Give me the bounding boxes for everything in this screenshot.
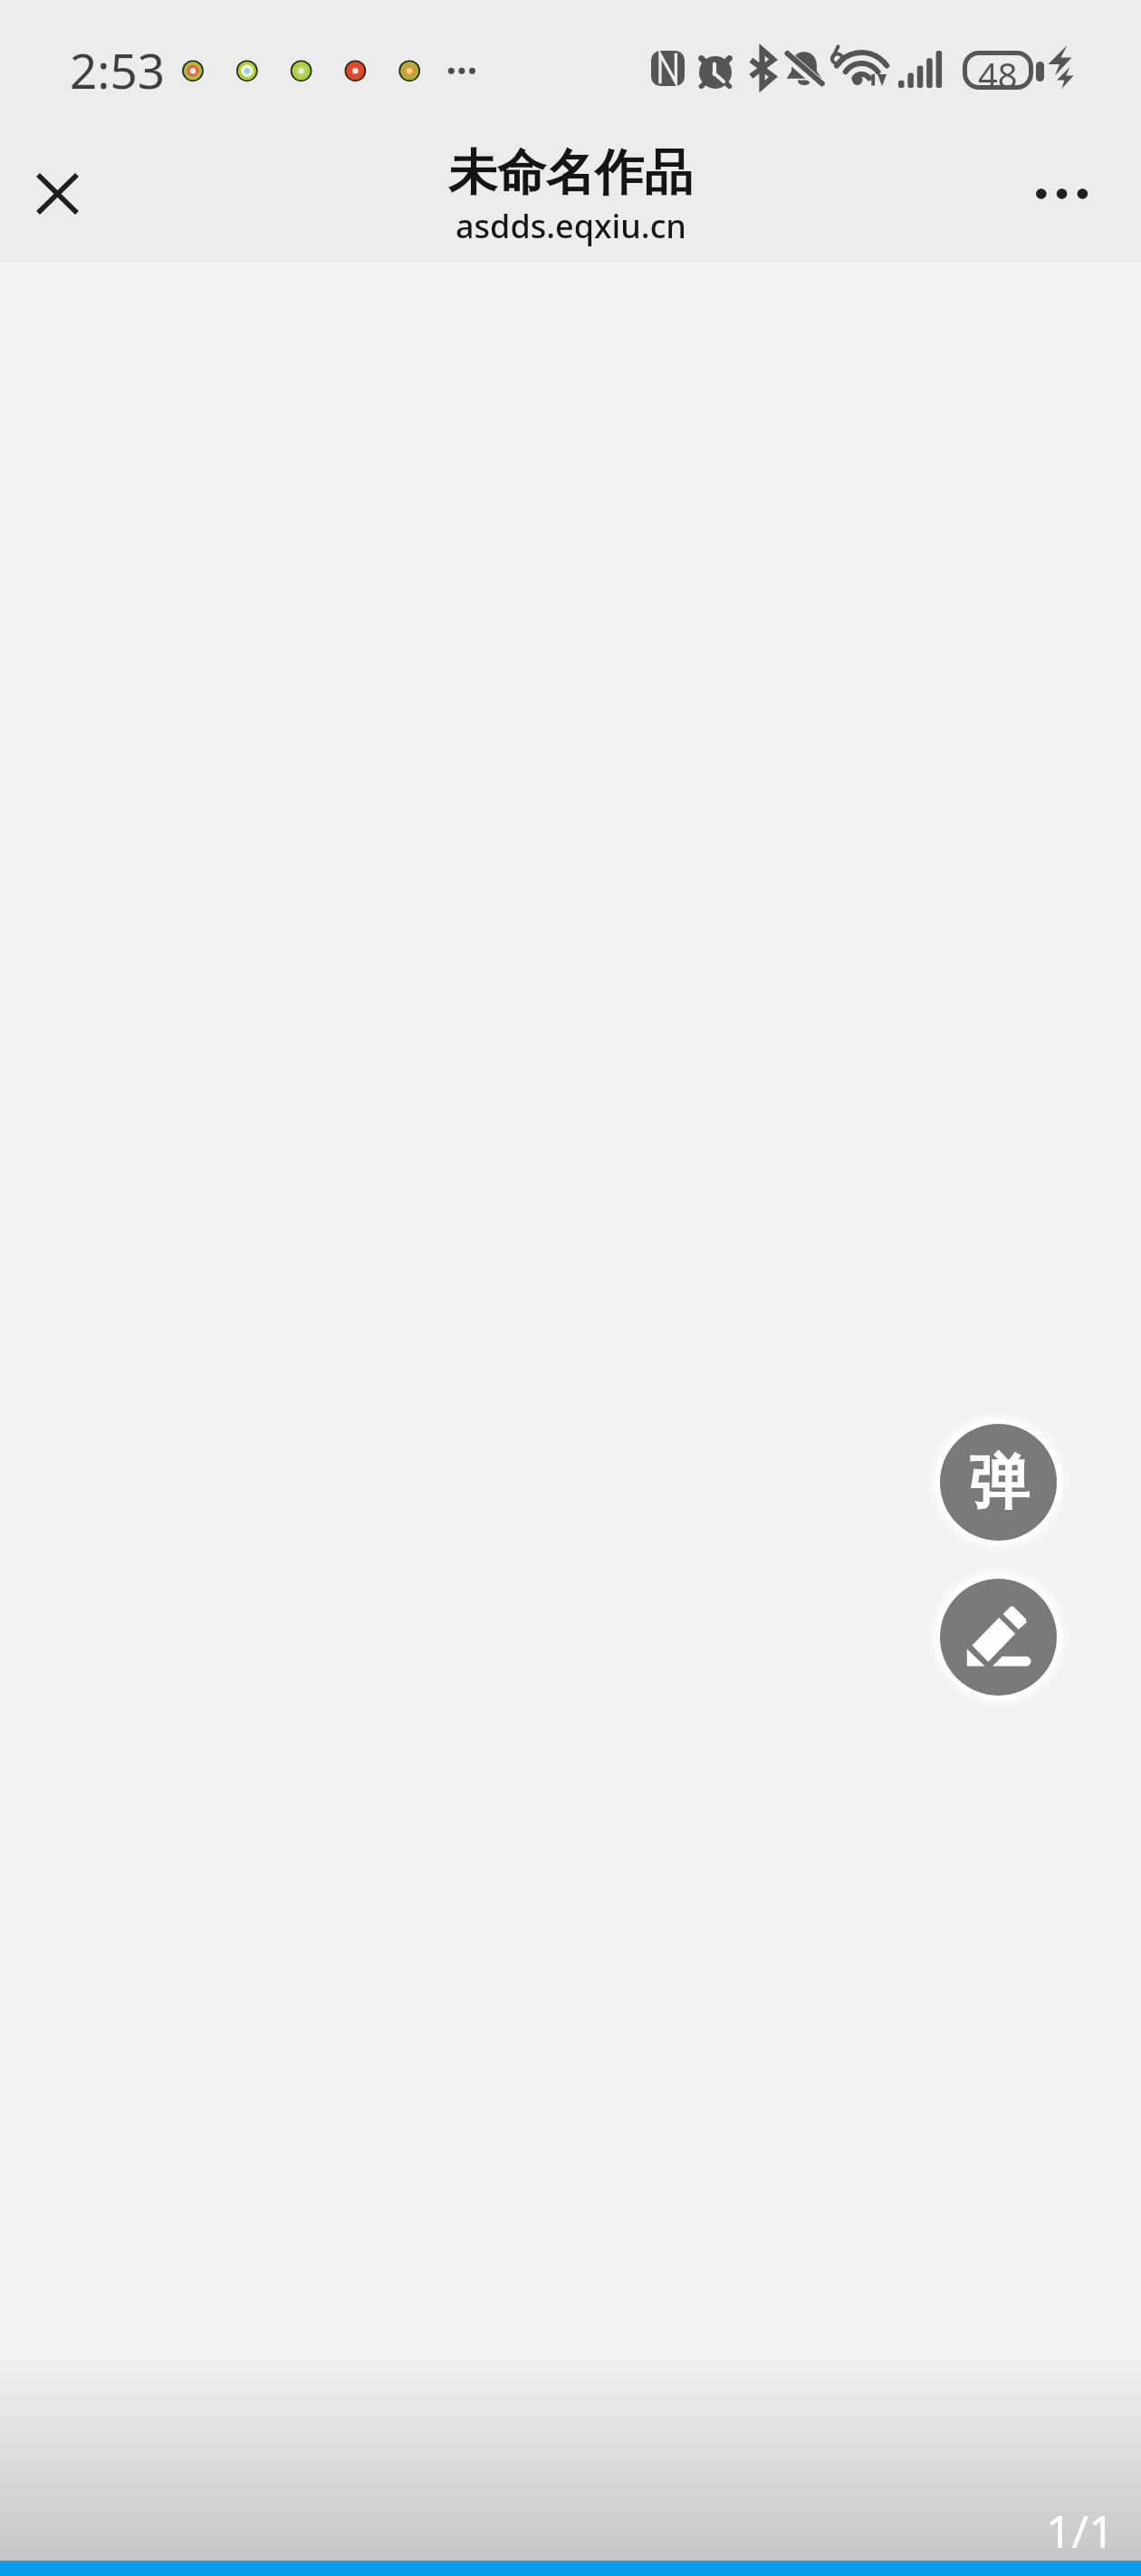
staticText: 2:53 <box>70 37 166 102</box>
staticText: 弹 <box>969 1445 1029 1520</box>
button[interactable]: 更多 <box>1021 153 1102 235</box>
button[interactable]: 关闭 <box>16 153 98 235</box>
button[interactable]: 弹 <box>940 1424 1057 1541</box>
staticText: 未命名作品 <box>448 142 693 204</box>
staticText: 48 <box>978 51 1018 90</box>
staticText: 1/1 <box>1046 2500 1115 2562</box>
button[interactable]: 编辑 <box>940 1579 1057 1696</box>
staticText: asdds.eqxiu.cn <box>455 204 686 248</box>
